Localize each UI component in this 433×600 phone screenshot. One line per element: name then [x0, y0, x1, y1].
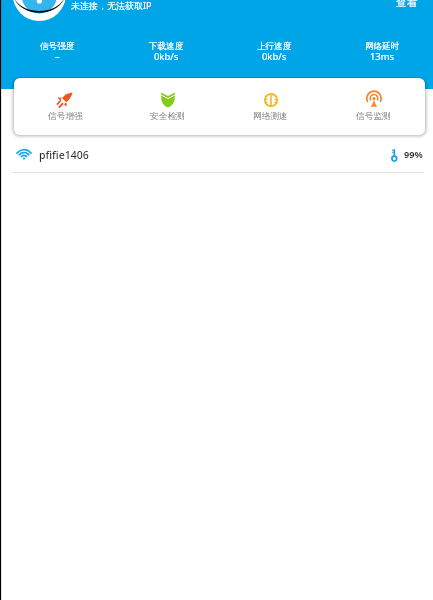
- staticText: 网络延时: [365, 41, 400, 52]
- staticText: 99%: [404, 148, 423, 161]
- staticText: 13ms: [370, 50, 395, 63]
- button[interactable]: pfifie1406: [0, 137, 433, 173]
- button[interactable]: 信号监测: [322, 78, 425, 122]
- staticText: 0kb/s: [154, 50, 179, 63]
- staticText: 上行速度: [257, 41, 292, 52]
- button[interactable]: 安全检测: [116, 78, 219, 122]
- staticText: 未连接，无法获取IP: [71, 0, 152, 11]
- staticText: 网络测速: [253, 111, 288, 122]
- staticText: 信号增强: [48, 111, 83, 122]
- button[interactable]: 查看: [396, 0, 418, 9]
- staticText: 安全检测: [150, 111, 185, 122]
- staticText: 查看: [396, 0, 418, 9]
- staticText: 信号强度: [40, 41, 75, 52]
- staticText: 信号监测: [356, 111, 391, 122]
- staticText: pfifie1406: [39, 148, 89, 162]
- staticText: –: [55, 50, 60, 63]
- button[interactable]: 信号增强: [14, 78, 116, 122]
- button[interactable]: 网络测速: [219, 78, 322, 122]
- staticText: 0kb/s: [262, 50, 287, 63]
- staticText: 下载速度: [149, 41, 184, 52]
